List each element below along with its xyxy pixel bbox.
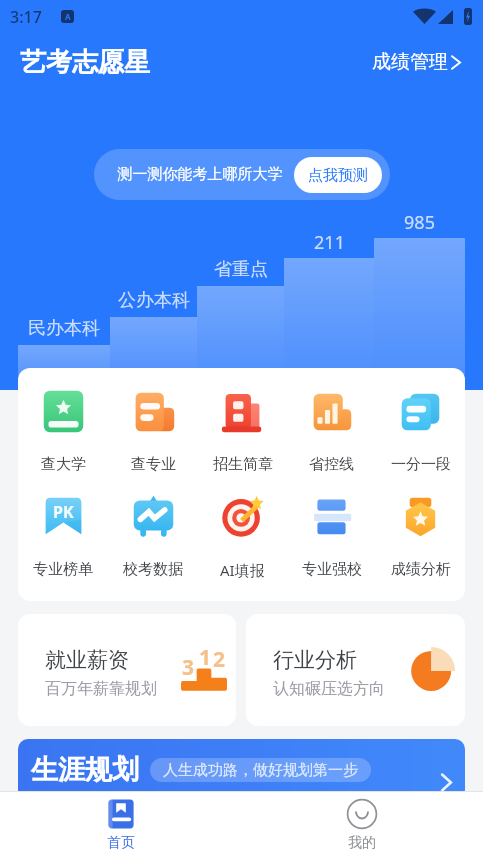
staticText: 生涯规划: [31, 753, 139, 787]
staticText: AI填报: [220, 560, 265, 580]
button[interactable]: 就业薪资: [18, 614, 236, 726]
staticText: 2: [213, 645, 226, 674]
staticText: 一分一段: [391, 455, 451, 474]
button[interactable]: 查大学: [18, 388, 108, 474]
staticText: 就业薪资: [45, 647, 129, 673]
staticText: PK: [53, 501, 74, 523]
button[interactable]: 我的: [241, 799, 483, 852]
staticText: 点我预测: [308, 166, 368, 185]
staticText: 专业强校: [302, 560, 362, 579]
staticText: 民办本科: [28, 317, 100, 340]
button[interactable]: 成绩管理: [370, 44, 463, 80]
button[interactable]: 查专业: [108, 388, 198, 474]
staticText: 校考数据: [123, 560, 183, 579]
staticText: 公办本科: [118, 289, 190, 312]
staticText: 3: [182, 653, 195, 682]
button[interactable]: 校考数据: [108, 493, 198, 579]
button[interactable]: PK: [18, 493, 108, 579]
staticText: 985: [404, 210, 435, 235]
staticText: 行业分析: [273, 647, 357, 673]
staticText: 成绩管理: [372, 50, 448, 74]
staticText: 查专业: [131, 455, 176, 474]
button[interactable]: 一分一段: [376, 388, 465, 474]
staticText: 省控线: [309, 455, 354, 474]
button[interactable]: 生涯规划: [18, 739, 465, 800]
staticText: 1: [199, 643, 212, 672]
staticText: 认知碾压选方向: [273, 679, 385, 699]
staticText: 成绩分析: [391, 560, 451, 579]
staticText: 人生成功路，做好规划第一步: [163, 761, 358, 780]
button[interactable]: 测一测你能考上哪所大学: [94, 149, 390, 200]
staticText: 首页: [107, 834, 135, 852]
staticText: 我的: [348, 834, 376, 852]
button[interactable]: 行业分析: [246, 614, 465, 726]
staticText: 查大学: [41, 455, 86, 474]
staticText: 211: [314, 230, 345, 255]
staticText: 专业榜单: [33, 560, 93, 579]
staticText: A: [65, 11, 71, 22]
button[interactable]: 招生简章: [198, 388, 287, 474]
staticText: 招生简章: [213, 455, 273, 474]
staticText: 百万年薪靠规划: [45, 679, 157, 699]
button[interactable]: 首页: [0, 799, 241, 852]
button[interactable]: 成绩分析: [376, 493, 465, 579]
staticText: 3:17: [10, 6, 42, 28]
button[interactable]: 省控线: [287, 388, 376, 474]
staticText: 省重点: [214, 258, 268, 281]
staticText: 艺考志愿星: [20, 46, 150, 79]
button[interactable]: AI填报: [198, 493, 287, 580]
staticText: 测一测你能考上哪所大学: [106, 165, 294, 184]
button[interactable]: 专业强校: [287, 493, 376, 579]
